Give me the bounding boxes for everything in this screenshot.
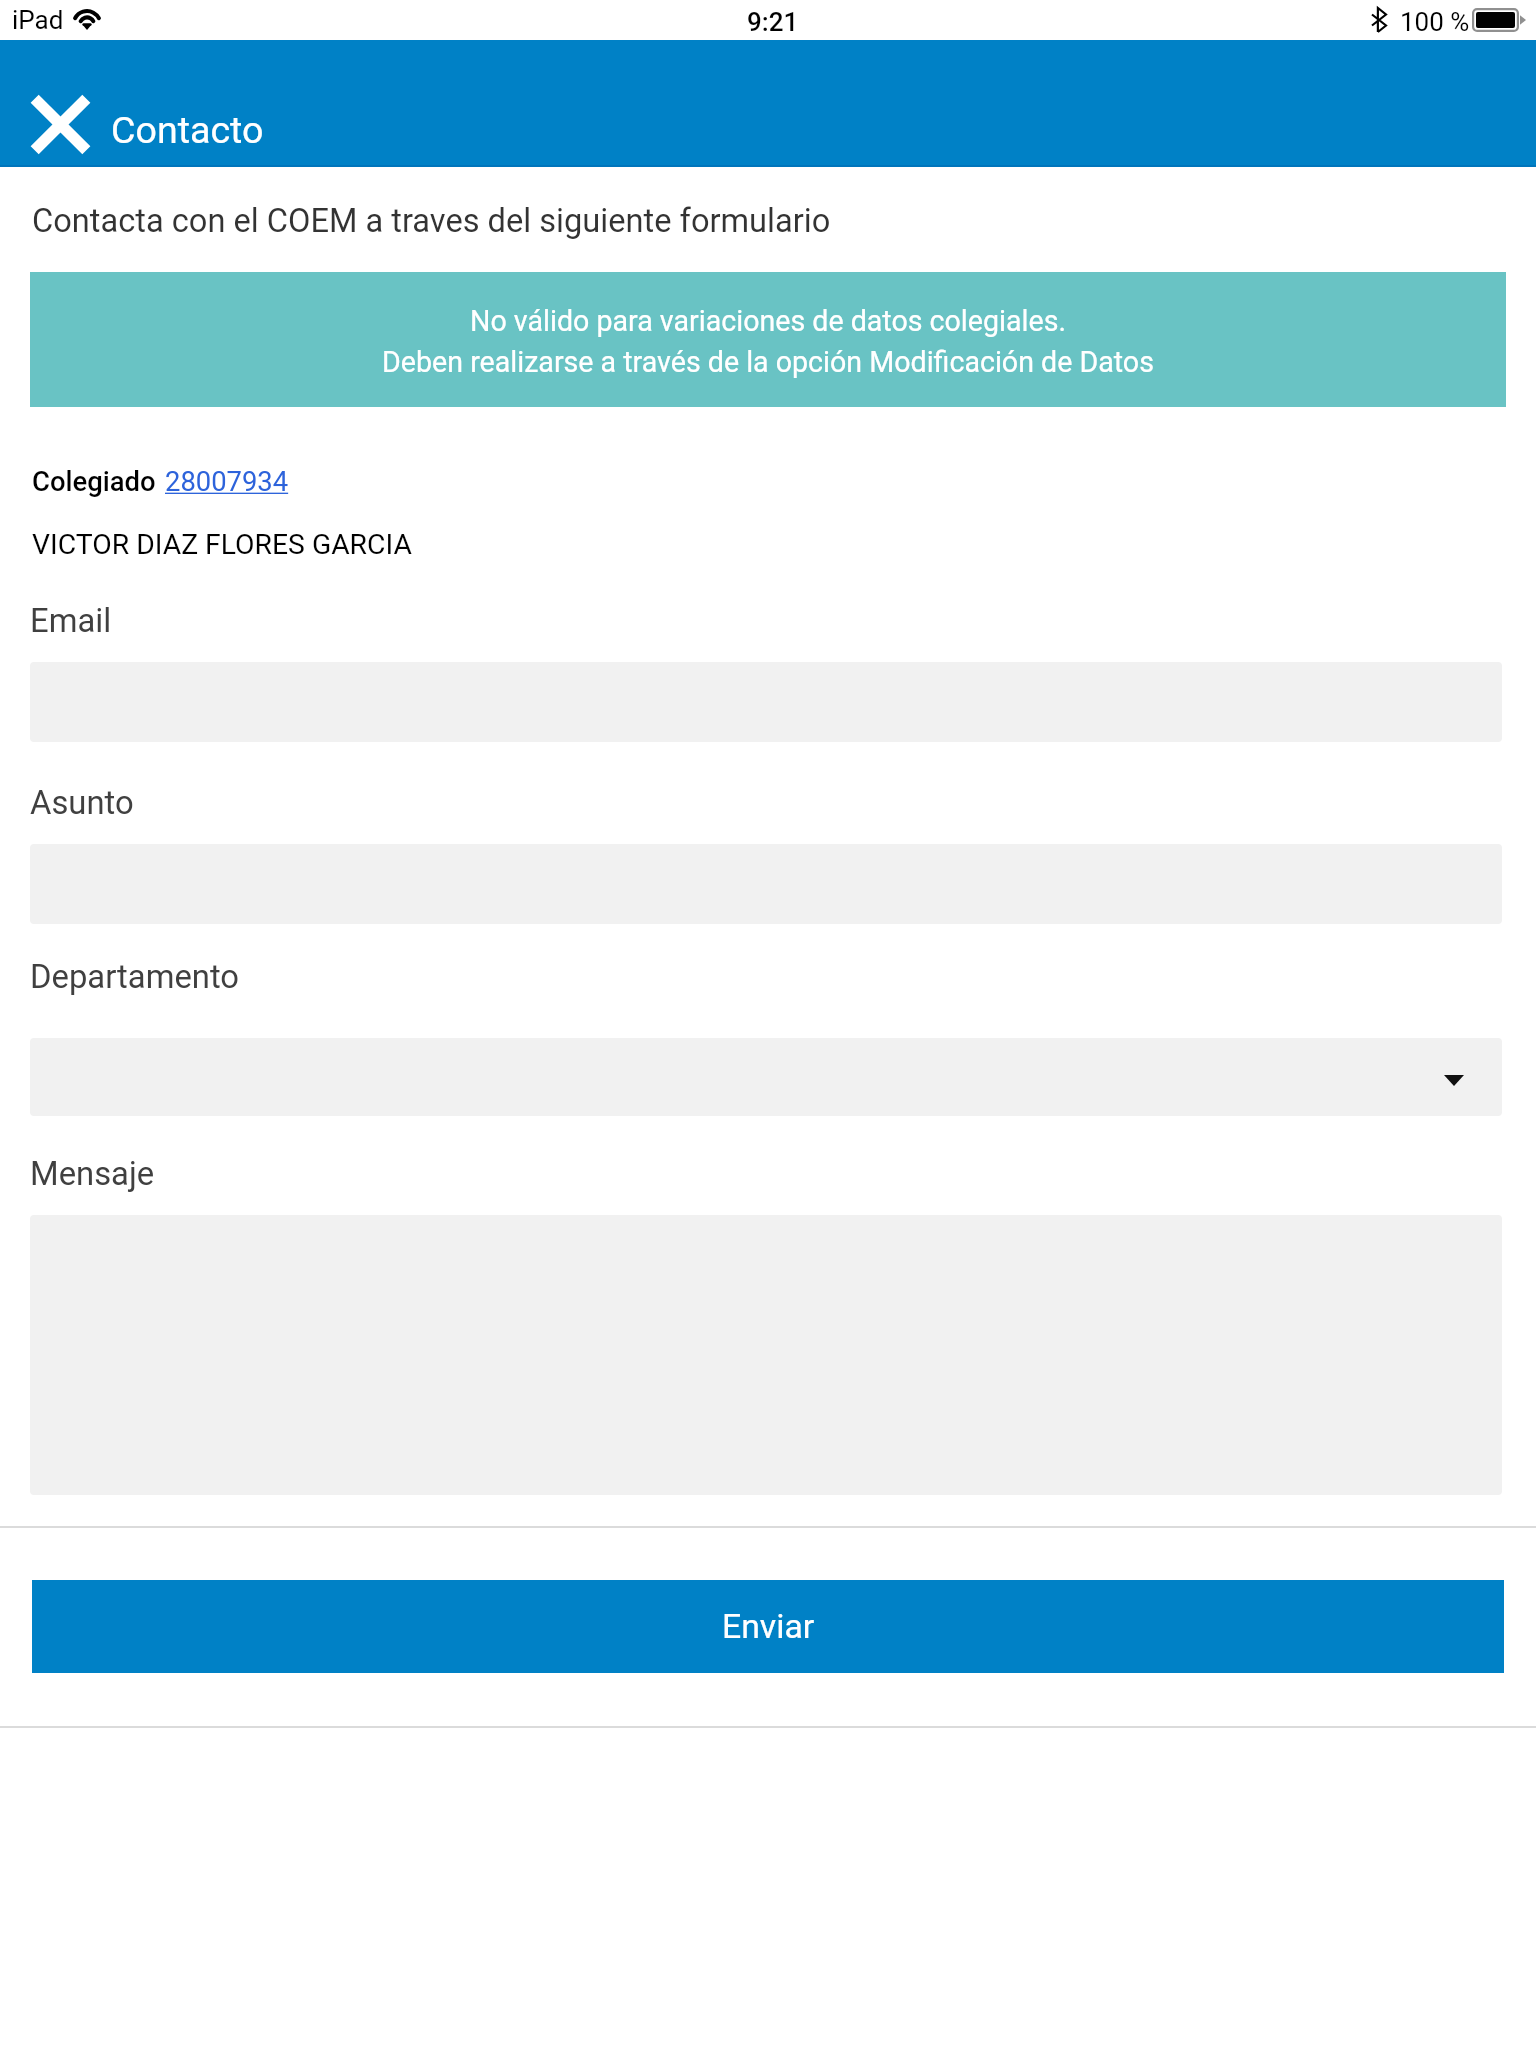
button[interactable]: Enviar: [32, 1580, 1504, 1673]
staticText: Colegiado: [32, 466, 156, 498]
staticText: No válido para variaciones de datos cole…: [470, 304, 1066, 338]
staticText: Contacta con el COEM a traves del siguie…: [32, 202, 831, 240]
staticText: Enviar: [722, 1607, 815, 1647]
staticText: Deben realizarse a través de la opción M…: [382, 345, 1154, 379]
staticText: 100 %: [1400, 7, 1470, 37]
button[interactable]: Close: [16, 80, 104, 168]
staticText: Asunto: [30, 784, 134, 822]
button[interactable]: Departamento dropdown: [30, 1038, 1502, 1116]
staticText: Email: [30, 602, 112, 640]
button[interactable]: 28007934: [165, 466, 289, 498]
staticText: VICTOR DIAZ FLORES GARCIA: [32, 528, 412, 561]
staticText: 9:21: [747, 7, 799, 37]
staticText: Contacto: [111, 108, 264, 152]
staticText: Departamento: [30, 958, 240, 996]
staticText: Mensaje: [30, 1155, 155, 1193]
staticText: iPad: [12, 5, 64, 35]
